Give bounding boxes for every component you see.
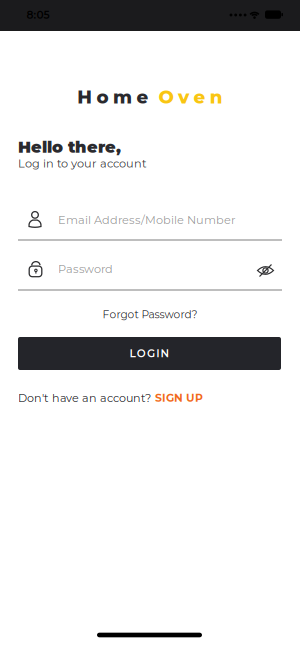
staticText: SIGN UP xyxy=(155,391,203,405)
button[interactable]: LOGIN xyxy=(18,337,281,370)
staticText: H xyxy=(77,86,92,108)
staticText: Hello there, xyxy=(18,137,121,157)
staticText: e xyxy=(136,86,148,108)
staticText: LOGIN xyxy=(129,347,170,360)
staticText: e xyxy=(193,86,205,108)
staticText: Forgot Password? xyxy=(102,308,197,321)
staticText: n xyxy=(210,86,223,108)
button[interactable]: Email Address/Mobile Number xyxy=(18,206,282,240)
staticText: m xyxy=(113,86,132,108)
staticText: 8:05 xyxy=(26,8,49,21)
button[interactable]: Password xyxy=(18,256,282,290)
button[interactable]: Show password xyxy=(253,258,277,282)
staticText: Don't have an account? xyxy=(18,391,151,405)
staticText: o xyxy=(97,86,109,108)
staticText: Log in to your account xyxy=(18,157,147,170)
button[interactable]: Forgot Password? xyxy=(102,308,197,321)
button[interactable]: SIGN UP xyxy=(155,391,203,405)
staticText: Email Address/Mobile Number xyxy=(58,213,236,227)
staticText: Password xyxy=(58,262,113,276)
staticText: O xyxy=(159,86,174,108)
staticText: v xyxy=(178,86,189,108)
